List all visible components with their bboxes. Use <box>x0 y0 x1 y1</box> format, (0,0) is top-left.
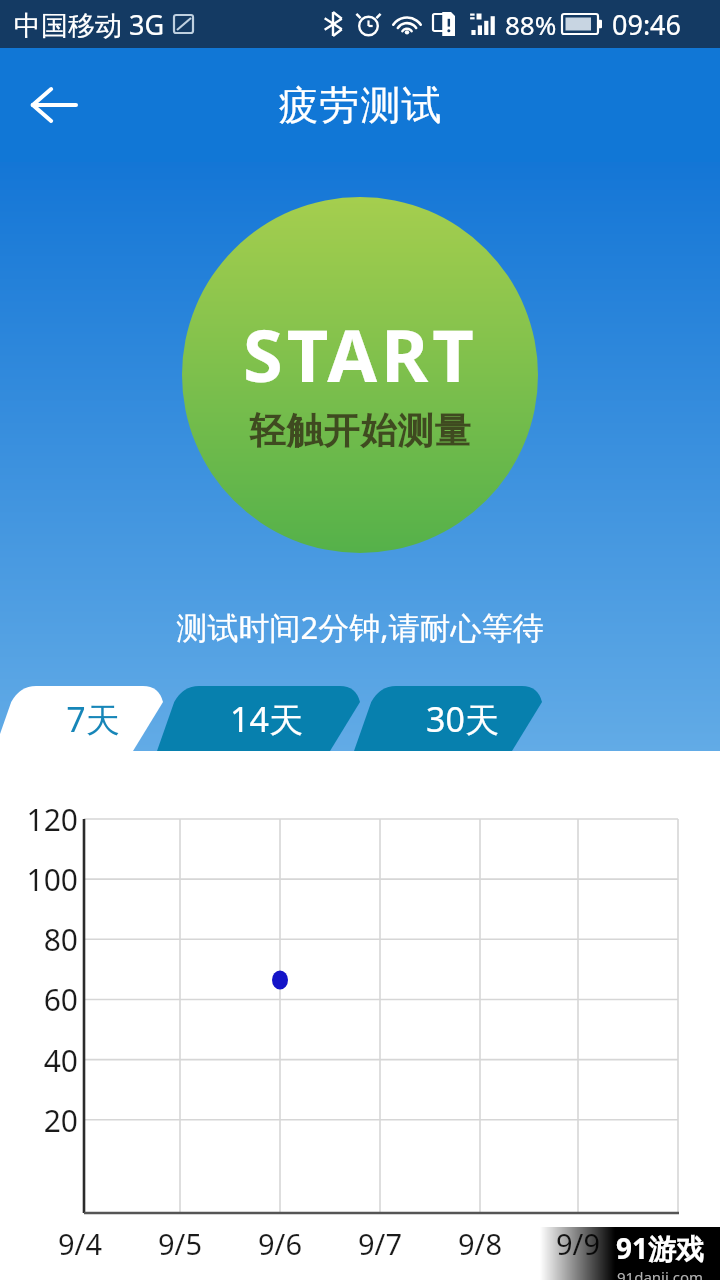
staticText: 9/7 <box>358 1224 402 1263</box>
staticText: 88% <box>505 7 557 42</box>
staticText: 7天 <box>66 696 120 742</box>
staticText: 100 <box>26 859 78 899</box>
button[interactable]: 30天 <box>374 686 550 751</box>
staticText: 测试时间2分钟,请耐心等待 <box>176 606 544 648</box>
staticText: 60 <box>43 979 78 1019</box>
button[interactable]: START 轻触开始测量 <box>182 197 538 553</box>
staticText: 中国移动 3G <box>14 6 165 43</box>
staticText: START <box>243 305 478 403</box>
button[interactable]: Back <box>8 48 98 162</box>
staticText: 40 <box>43 1040 78 1080</box>
staticText: 9/8 <box>458 1224 502 1263</box>
staticText: 120 <box>26 799 78 839</box>
staticText: 9/6 <box>258 1224 302 1263</box>
staticText: 14天 <box>230 696 303 742</box>
staticText: 9/5 <box>158 1224 202 1263</box>
staticText: 09:46 <box>612 6 682 43</box>
staticText: 91游戏 <box>616 1229 705 1267</box>
staticText: 91danji.com <box>617 1267 704 1280</box>
staticText: 9/9 <box>556 1224 600 1263</box>
staticText: 轻触开始测量 <box>249 408 471 453</box>
staticText: 80 <box>43 919 78 959</box>
staticText: 20 <box>43 1100 78 1140</box>
button[interactable]: 7天 <box>12 686 174 751</box>
staticText: 疲劳测试 <box>278 80 442 130</box>
staticText: 30天 <box>426 696 499 742</box>
staticText: 9/4 <box>58 1224 102 1263</box>
button[interactable]: 14天 <box>178 686 354 751</box>
